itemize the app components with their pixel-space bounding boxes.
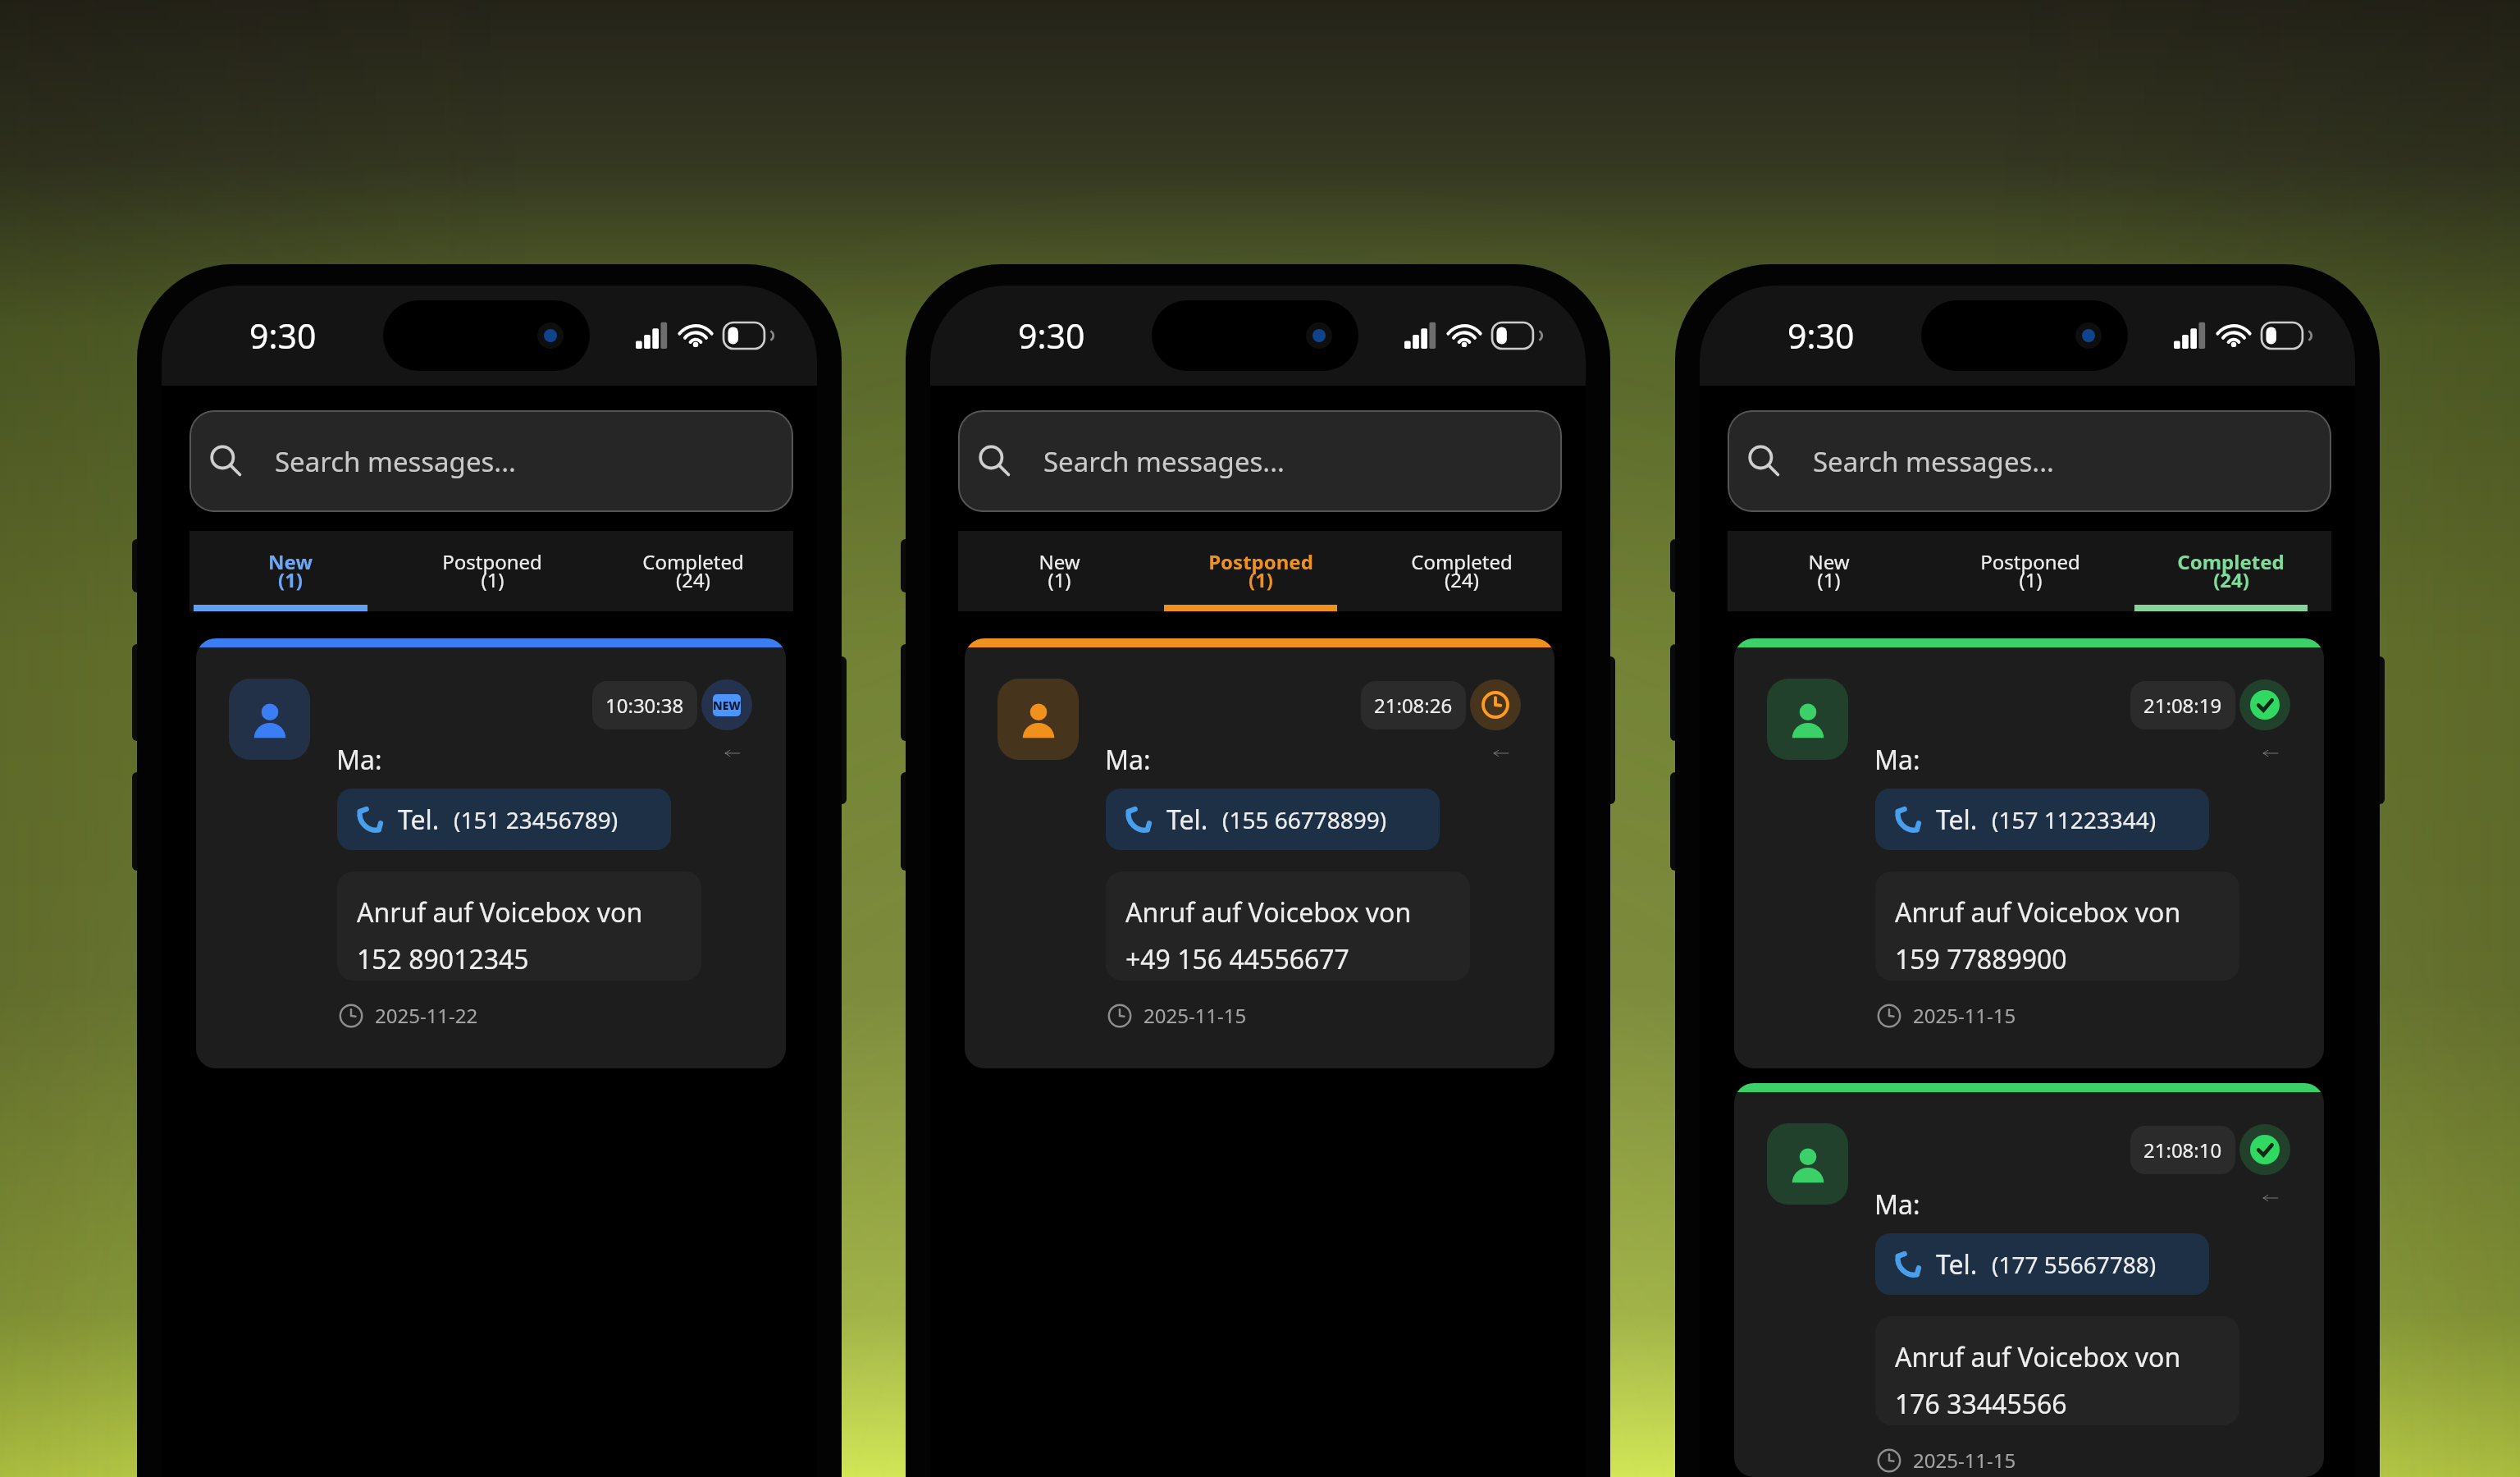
button[interactable]: Contact avatar bbox=[1767, 1123, 1848, 1205]
staticText: Tel. bbox=[1166, 802, 1208, 838]
staticText: (1) bbox=[1817, 566, 1841, 593]
staticText: Ma: bbox=[1105, 742, 1151, 778]
button[interactable]: Tel. bbox=[1875, 789, 2209, 850]
button[interactable]: Postponed bbox=[1160, 531, 1361, 611]
staticText: Postponed bbox=[442, 548, 542, 575]
button[interactable]: Completed bbox=[1361, 531, 1562, 611]
staticText: Anruf auf Voicebox von bbox=[1895, 1339, 2181, 1375]
staticText: Tel. bbox=[1936, 802, 1978, 838]
button[interactable]: Completed bbox=[2239, 1124, 2290, 1175]
button[interactable]: New bbox=[189, 531, 391, 611]
staticText: Ma: bbox=[1874, 1187, 1920, 1223]
button[interactable]: Postponed bbox=[1929, 531, 2130, 611]
staticText: (1) bbox=[481, 566, 504, 593]
staticText: 2025-11-22 bbox=[375, 1002, 478, 1029]
staticText: Ma: bbox=[336, 742, 382, 778]
staticText: 152 89012345 bbox=[357, 941, 529, 977]
staticText: Completed bbox=[1411, 548, 1513, 575]
staticText: Anruf auf Voicebox von bbox=[1895, 894, 2181, 931]
button[interactable]: Contact avatar bbox=[1767, 679, 1848, 760]
button[interactable]: Postponed bbox=[391, 531, 592, 611]
staticText: Completed bbox=[2177, 548, 2285, 575]
staticText: (24) bbox=[676, 566, 710, 593]
staticText: (155 66778899) bbox=[1222, 804, 1387, 835]
staticText: 9:30 bbox=[1787, 313, 1855, 359]
button[interactable]: Contact avatar bbox=[196, 638, 786, 1068]
button[interactable]: Back bbox=[2259, 742, 2282, 765]
button[interactable]: Postponed bbox=[1470, 679, 1521, 730]
staticText: NEW bbox=[713, 697, 741, 713]
staticText: 159 77889900 bbox=[1895, 941, 2067, 977]
staticText: 2025-11-15 bbox=[1913, 1447, 2016, 1474]
staticText: Search messages... bbox=[275, 443, 516, 480]
button[interactable]: Contact avatar bbox=[997, 679, 1079, 760]
staticText: Postponed bbox=[1208, 548, 1313, 575]
staticText: 21:08:19 bbox=[2143, 692, 2222, 719]
button[interactable]: Back bbox=[2259, 1187, 2282, 1209]
staticText: +49 156 44556677 bbox=[1125, 941, 1349, 977]
staticText: Tel. bbox=[1936, 1246, 1978, 1283]
staticText: (1) bbox=[1048, 566, 1071, 593]
button[interactable]: Completed bbox=[2130, 531, 2331, 611]
button[interactable]: Search messages... bbox=[1728, 410, 2331, 512]
staticText: Search messages... bbox=[1043, 443, 1285, 480]
button[interactable]: Contact avatar bbox=[965, 638, 1554, 1068]
staticText: Anruf auf Voicebox von bbox=[1125, 894, 1412, 931]
button[interactable]: Search messages... bbox=[958, 410, 1562, 512]
button[interactable]: Contact avatar bbox=[1734, 1083, 2324, 1477]
button[interactable]: Back bbox=[1490, 742, 1513, 765]
button[interactable]: Contact avatar bbox=[1734, 638, 2324, 1068]
staticText: Completed bbox=[642, 548, 744, 575]
staticText: (1) bbox=[2019, 566, 2043, 593]
button[interactable]: Tel. bbox=[337, 789, 671, 850]
button[interactable]: Completed bbox=[592, 531, 793, 611]
staticText: New bbox=[1808, 548, 1850, 575]
staticText: 21:08:26 bbox=[1374, 692, 1453, 719]
staticText: (157 11223344) bbox=[1992, 804, 2157, 835]
staticText: 9:30 bbox=[1018, 313, 1085, 359]
staticText: 10:30:38 bbox=[605, 692, 684, 719]
button[interactable]: New bbox=[958, 531, 1160, 611]
staticText: 9:30 bbox=[249, 313, 317, 359]
button[interactable]: Search messages... bbox=[189, 410, 793, 512]
staticText: Anruf auf Voicebox von bbox=[357, 894, 643, 931]
staticText: 21:08:10 bbox=[2143, 1136, 2222, 1164]
staticText: New bbox=[268, 548, 313, 575]
button[interactable]: New bbox=[1728, 531, 1929, 611]
staticText: Postponed bbox=[1980, 548, 2080, 575]
button[interactable]: Contact avatar bbox=[229, 679, 310, 760]
staticText: 2025-11-15 bbox=[1144, 1002, 1247, 1029]
staticText: New bbox=[1039, 548, 1080, 575]
staticText: Search messages... bbox=[1813, 443, 2054, 480]
staticText: (1) bbox=[1249, 566, 1273, 593]
staticText: Tel. bbox=[398, 802, 440, 838]
staticText: Ma: bbox=[1874, 742, 1920, 778]
staticText: (1) bbox=[278, 566, 303, 593]
button[interactable]: Tel. bbox=[1106, 789, 1440, 850]
button[interactable]: New message bbox=[701, 679, 752, 730]
button[interactable]: Completed bbox=[2239, 679, 2290, 730]
staticText: 2025-11-15 bbox=[1913, 1002, 2016, 1029]
staticText: 176 33445566 bbox=[1895, 1386, 2067, 1422]
staticText: (24) bbox=[1445, 566, 1479, 593]
staticText: (151 23456789) bbox=[454, 804, 619, 835]
button[interactable]: Tel. bbox=[1875, 1233, 2209, 1295]
staticText: (177 55667788) bbox=[1992, 1249, 2157, 1280]
button[interactable]: Back bbox=[721, 742, 744, 765]
staticText: (24) bbox=[2213, 566, 2249, 593]
